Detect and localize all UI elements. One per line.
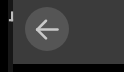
button[interactable]: Navigate back: [25, 7, 69, 51]
